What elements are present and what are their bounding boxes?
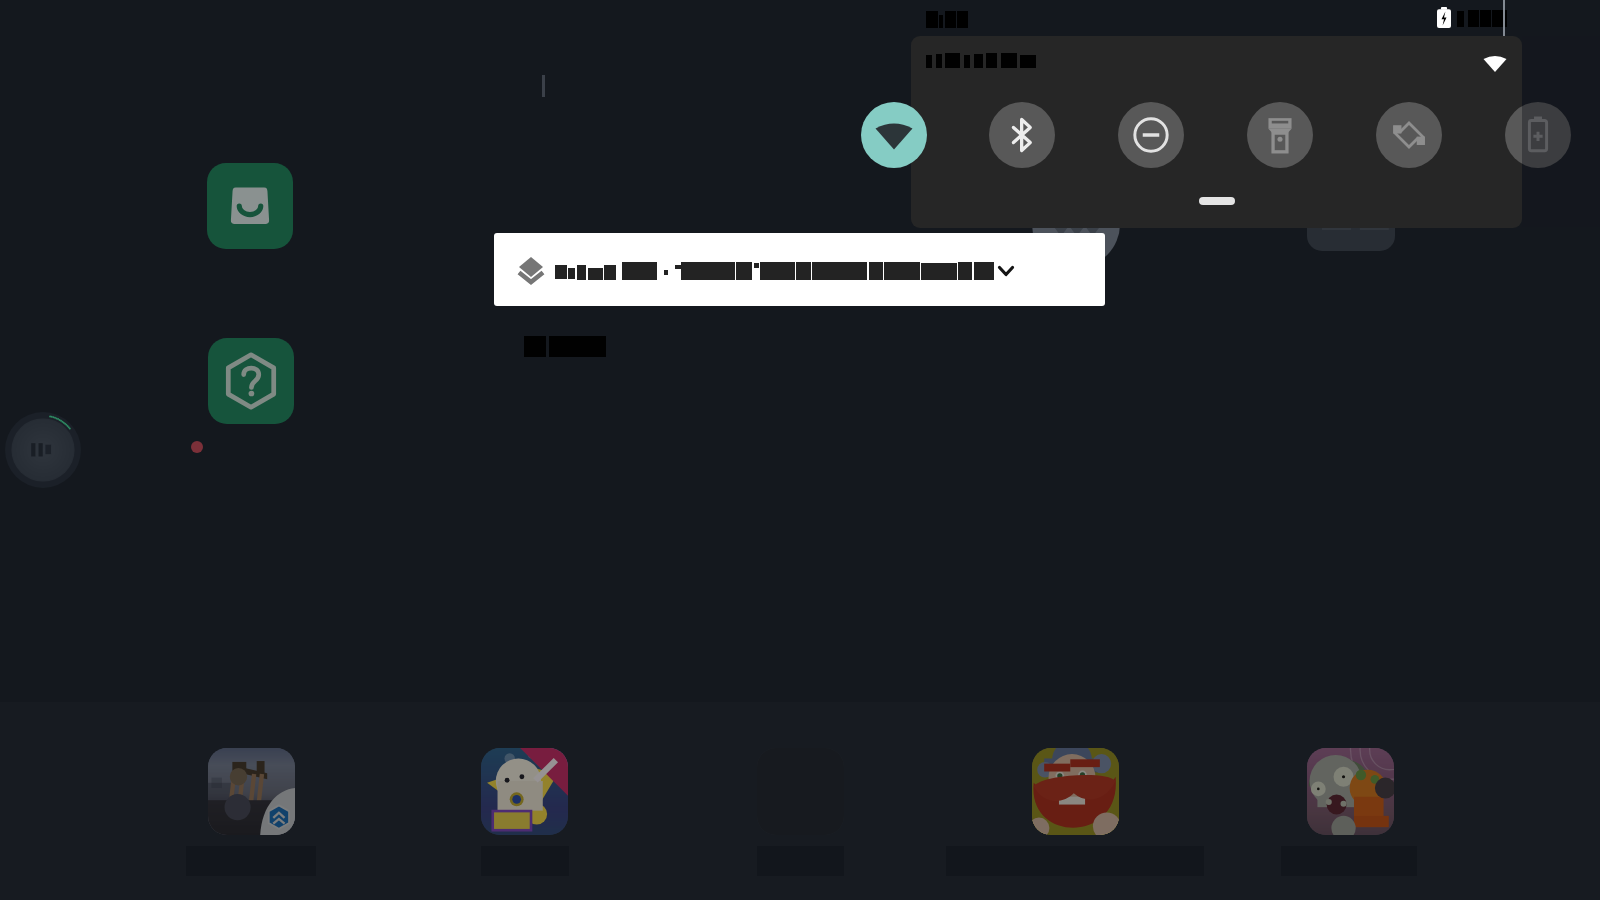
button[interactable]: Game four xyxy=(946,748,1204,876)
button[interactable]: Flashlight xyxy=(1247,102,1313,168)
button[interactable]: Game five xyxy=(1281,748,1417,876)
button[interactable]: Game one xyxy=(186,748,316,876)
button[interactable]: Battery saver xyxy=(1505,102,1571,168)
button[interactable]: Bluetooth xyxy=(989,102,1055,168)
button[interactable]: Wi-Fi xyxy=(861,102,927,168)
button[interactable]: Search widget xyxy=(1032,180,1120,268)
button[interactable]: Auto rotate xyxy=(1376,102,1442,168)
button[interactable]: Assistant xyxy=(5,412,81,488)
button[interactable] xyxy=(494,233,1105,306)
button[interactable]: Game two xyxy=(481,748,569,876)
button[interactable]: Do not disturb xyxy=(1118,102,1184,168)
button[interactable]: Widget xyxy=(1307,205,1395,251)
button[interactable]: Store xyxy=(207,163,293,249)
button[interactable]: Help xyxy=(208,338,294,424)
